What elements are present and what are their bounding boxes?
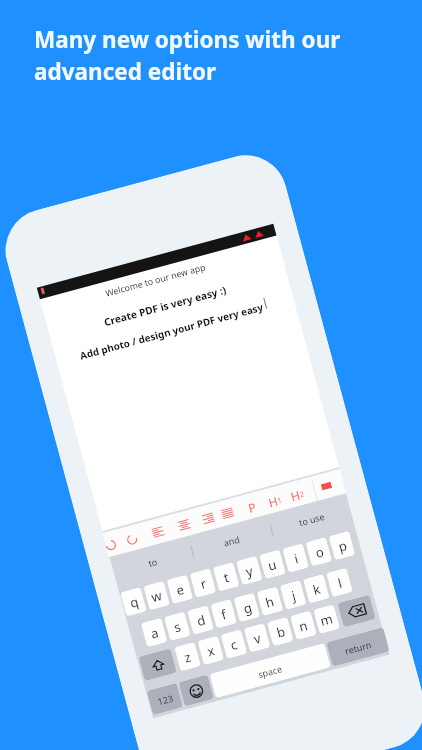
button[interactable]: v [244,623,270,653]
staticText: p [336,536,349,556]
button[interactable]: o [305,537,332,567]
other: Redo [125,532,139,546]
button[interactable]: q [120,587,147,617]
staticText: f [219,605,228,624]
other: Paragraph alignment [177,518,191,532]
button[interactable]: n [290,611,317,640]
button[interactable]: and [189,515,275,567]
other: Emoji keyboard [188,682,205,700]
staticText: b [275,622,287,642]
staticText: x [205,641,217,660]
button[interactable]: c [220,629,247,659]
staticText: l [336,574,344,592]
staticText: m [318,609,335,630]
staticText: j [289,586,298,604]
staticText: h [263,592,277,612]
staticText: H [267,493,280,510]
staticText: u [266,555,279,575]
staticText: d [195,611,207,630]
other: Undo [104,538,118,551]
staticText: space [257,662,284,680]
staticText: 123 [156,691,175,707]
button[interactable]: e [166,574,193,604]
staticText: P [246,498,258,516]
button[interactable]: z [174,642,201,671]
staticText: to [147,555,159,569]
button[interactable]: Shift [138,648,177,681]
button[interactable]: p [329,531,355,560]
button[interactable]: return [326,627,390,667]
button[interactable]: j [280,580,307,610]
staticText: 1 [276,495,284,506]
button[interactable]: Redo [123,530,141,548]
staticText: g [241,598,254,618]
button[interactable]: s [164,611,191,641]
staticText: n [297,616,310,636]
button[interactable]: to use [268,493,354,545]
button[interactable]: w [143,581,170,610]
button[interactable]: y [236,556,263,585]
button[interactable]: Paragraph alignment [149,523,167,541]
staticText: and [222,533,242,549]
button[interactable]: Paragraph alignment [199,509,217,528]
staticText: i [292,549,301,568]
button[interactable]: d [187,605,214,635]
staticText: w [149,586,164,606]
staticText: return [343,638,373,657]
button[interactable]: r [190,568,216,598]
button[interactable]: Emoji keyboard [178,675,214,707]
button[interactable]: k [303,574,330,603]
staticText: y [244,561,255,581]
staticText: k [311,580,322,599]
button[interactable]: Backspace [337,595,376,627]
staticText: r [198,574,209,593]
button[interactable]: m [313,604,340,634]
staticText: 2 [299,489,306,500]
button[interactable]: space [209,643,331,698]
button[interactable]: Paragraph alignment [218,504,237,522]
other: Backspace [347,602,367,619]
staticText: e [174,580,187,599]
button[interactable]: a [141,618,168,647]
staticText: t [221,568,231,587]
staticText: q [128,592,140,612]
other: Paragraph alignment [202,512,215,525]
staticText: z [182,647,193,667]
button[interactable]: i [282,543,309,573]
staticText: a [149,623,161,643]
staticText: Add photo / design your PDF very easy [78,299,265,361]
staticText: v [251,629,263,648]
staticText: o [313,542,326,562]
button[interactable]: h [257,586,283,616]
button[interactable]: x [197,636,224,665]
button[interactable]: Undo [102,536,120,554]
other: Shift [150,656,167,674]
button[interactable]: Text colour [321,482,332,490]
staticText: H [289,487,302,504]
button[interactable]: t [213,562,239,592]
button[interactable]: g [233,593,260,622]
button[interactable]: l [326,568,353,597]
button[interactable]: 123 [147,683,183,715]
other: Paragraph alignment [151,525,165,539]
staticText: s [172,617,183,636]
button[interactable] [37,224,276,299]
button[interactable]: u [259,549,286,579]
button[interactable]: b [267,617,294,646]
staticText: Create PDF is very easy :) [102,282,229,329]
other: Paragraph alignment [221,506,234,520]
button[interactable]: f [210,599,237,628]
staticText: to use [297,510,326,528]
staticText: Welcome to our new app [104,261,207,300]
staticText: Many new options with our advanced edito… [34,24,341,86]
button[interactable]: to [109,536,196,588]
staticText: c [228,635,240,654]
button[interactable]: Paragraph alignment [175,516,193,534]
